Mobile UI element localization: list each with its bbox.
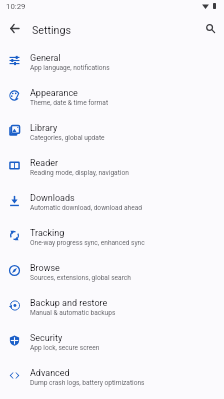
staticText: 10:29 xyxy=(6,2,26,11)
staticText: App language, notifications xyxy=(30,64,110,72)
staticText: Settings xyxy=(32,24,72,37)
staticText: Categories, global update xyxy=(30,134,105,142)
staticText: App lock, secure screen xyxy=(30,344,100,352)
staticText: Browse xyxy=(30,263,60,274)
button[interactable]: Search xyxy=(198,16,222,40)
staticText: Reader xyxy=(30,158,59,169)
staticText: Downloads xyxy=(30,193,75,204)
staticText: One-way progress sync, enhanced sync xyxy=(30,239,145,247)
button[interactable]: Back xyxy=(2,16,26,40)
staticText: Manual & automatic backups xyxy=(30,309,116,317)
button[interactable]: Backup and restore xyxy=(0,288,224,323)
staticText: General xyxy=(30,53,61,64)
button[interactable]: Advanced xyxy=(0,358,224,393)
button[interactable]: Reader xyxy=(0,148,224,183)
staticText: Tracking xyxy=(30,228,65,239)
staticText: Dump crash logs, battery optimizations xyxy=(30,379,145,387)
button[interactable]: Security xyxy=(0,323,224,358)
button[interactable]: Appearance xyxy=(0,78,224,113)
staticText: Appearance xyxy=(30,88,78,99)
button[interactable]: Browse xyxy=(0,253,224,288)
staticText: Sources, extensions, global search xyxy=(30,274,131,282)
button[interactable]: Tracking xyxy=(0,218,224,253)
staticText: Automatic download, download ahead xyxy=(30,204,143,212)
staticText: Advanced xyxy=(30,368,70,379)
button[interactable]: General xyxy=(0,43,224,78)
staticText: Library xyxy=(30,123,58,134)
staticText: Theme, date & time format xyxy=(30,99,109,107)
staticText: Security xyxy=(30,333,63,344)
staticText: Reading mode, display, navigation xyxy=(30,169,129,177)
button[interactable]: Downloads xyxy=(0,183,224,218)
staticText: Backup and restore xyxy=(30,298,108,309)
button[interactable]: Library xyxy=(0,113,224,148)
